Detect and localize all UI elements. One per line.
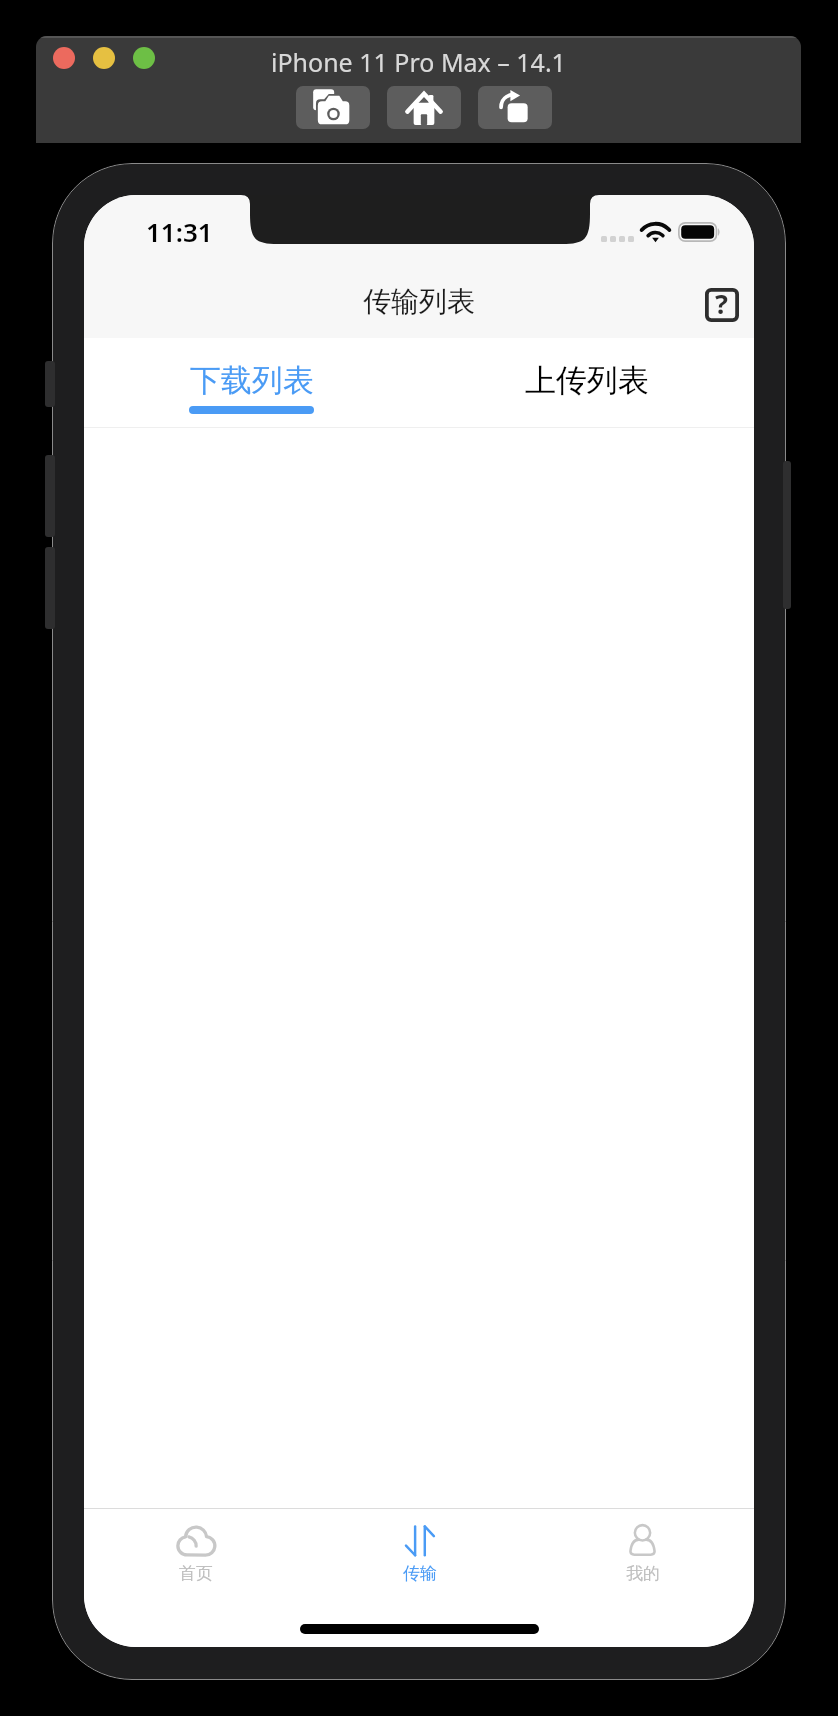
button[interactable]: Home (387, 86, 461, 129)
button[interactable] (53, 47, 75, 69)
button[interactable]: 我的 (531, 1509, 754, 1595)
staticText: 传输 (403, 1563, 437, 1584)
button[interactable]: 首页 (84, 1509, 308, 1595)
staticText: 11:31 (146, 214, 213, 249)
button[interactable]: Help (702, 285, 740, 323)
staticText: 下载列表 (190, 361, 314, 400)
staticText: 我的 (626, 1563, 660, 1584)
staticText: 首页 (179, 1563, 213, 1584)
button[interactable]: 下载列表 (84, 338, 419, 427)
button[interactable] (133, 47, 155, 69)
button[interactable] (93, 47, 115, 69)
button[interactable]: 上传列表 (419, 338, 754, 427)
button[interactable]: Rotate (478, 86, 552, 129)
staticText: 传输列表 (363, 284, 475, 319)
staticText: 上传列表 (525, 361, 649, 400)
staticText: ? (715, 285, 728, 322)
button[interactable]: 传输 (308, 1509, 531, 1595)
staticText: iPhone 11 Pro Max – 14.1 (271, 45, 566, 79)
button[interactable]: Screenshot (296, 86, 370, 129)
